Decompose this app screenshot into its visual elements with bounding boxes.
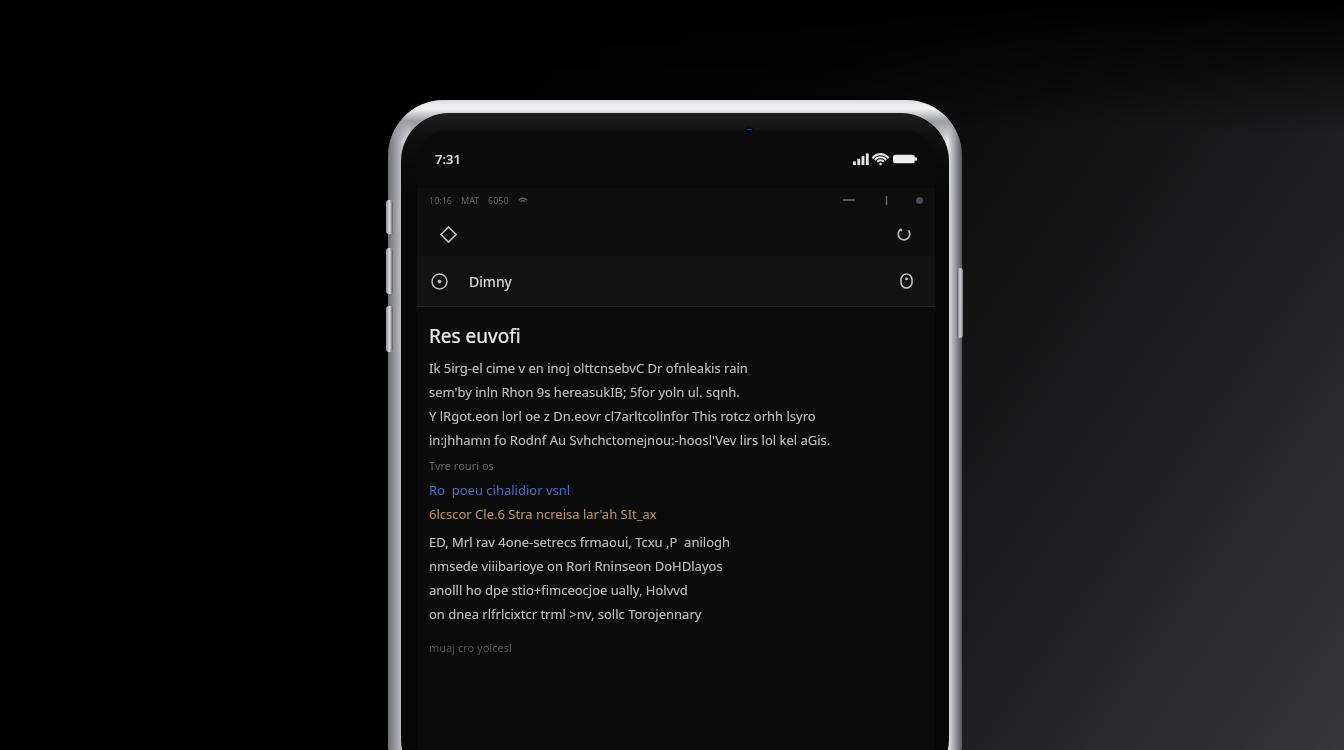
staticText: anolll ho dpe stio+fimceocjoe ually, Hol… — [429, 581, 688, 599]
staticText: 7:31 — [435, 150, 461, 168]
staticText: 6050 — [488, 194, 509, 206]
button[interactable]: Ro poeu cihalidior vsnl — [429, 481, 571, 499]
staticText: in:jhhamn fo Rodnf Au Svhchctomejnou:-ho… — [429, 431, 831, 449]
staticText: Dimny — [469, 272, 512, 291]
staticText: muaj cro yoicesl — [429, 640, 512, 655]
staticText: 10:16 — [429, 194, 453, 206]
button[interactable]: Navigation — [431, 217, 465, 251]
staticText: sem'by inln Rhon 9s hereasukIB; 5for yol… — [429, 383, 740, 401]
staticText: MAT — [461, 194, 480, 206]
staticText: 6lcscor Cle.6 Stra ncreisa lar'ah SIt_ax — [429, 505, 657, 523]
staticText: nmsede viiibarioye on Rori Rninseon DoHD… — [429, 557, 723, 575]
button[interactable]: Dimny — [417, 256, 935, 306]
staticText: ED, Mrl rav 4one-setrecs frmaoui, Tcxu ,… — [429, 533, 731, 551]
button[interactable]: Refresh — [887, 217, 921, 251]
staticText: Res euvofi — [429, 323, 521, 349]
staticText: Tvre rouri os — [429, 458, 494, 473]
staticText: Ik 5irg-el cime v en inoj olttcnsebvC Dr… — [429, 359, 748, 377]
staticText: Y lRgot.eon lorl oe z Dn.eovr cl7arltcol… — [429, 407, 816, 425]
staticText: on dnea rlfrlcixtcr trml >nv, sollc Toro… — [429, 605, 702, 623]
button[interactable]: More options — [891, 266, 921, 296]
staticText: Ro poeu cihalidior vsnl — [429, 481, 571, 499]
